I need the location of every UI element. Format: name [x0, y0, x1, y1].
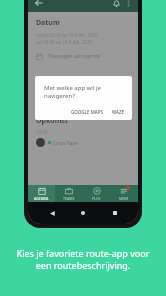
- button[interactable]: WAZE: [109, 107, 128, 117]
- button[interactable]: Home: [75, 205, 91, 221]
- button[interactable]: Meer opties: [122, 0, 134, 9]
- staticText: Route: [48, 84, 62, 91]
- staticText: tot 05:00 op 20 9 feb. 2020: [36, 39, 93, 45]
- staticText: TEAMS: [63, 196, 75, 201]
- button[interactable]: Meldingen: [110, 0, 122, 9]
- button[interactable]: AGENDA: [28, 185, 55, 202]
- button[interactable]: Recente apps: [107, 205, 123, 221]
- staticText: PLUS: [92, 196, 101, 201]
- button[interactable]: Toevoegen aan agenda: [36, 52, 130, 61]
- staticText: AGENDA: [34, 196, 49, 201]
- staticText: GOOGLE MAPS: [71, 109, 103, 115]
- staticText: Toevoegen aan agenda: [48, 53, 101, 60]
- button[interactable]: TEAMS: [55, 185, 82, 202]
- button[interactable]: Terug: [44, 205, 60, 221]
- staticText: Met welke app wil je navigeren?: [44, 84, 124, 100]
- button[interactable]: GOOGLE MAPS: [68, 107, 106, 117]
- button[interactable]: PLUS: [82, 185, 110, 202]
- button[interactable]: Adres kopiëren: [36, 98, 130, 107]
- staticText: MEER: [119, 196, 129, 201]
- staticText: Kies je favoriete route-app voor een rou…: [0, 247, 166, 272]
- button[interactable]: Route: [36, 83, 130, 92]
- staticText: vanaf 20:00 op 19 8 feb. 2020: [36, 32, 98, 38]
- button[interactable]: Terug: [33, 0, 45, 9]
- staticText: 19:45: [36, 129, 48, 135]
- staticText: Opkomst: [36, 116, 69, 126]
- staticText: WAZE: [112, 109, 125, 115]
- button[interactable]: MEER: [110, 185, 138, 202]
- staticText: Corps Haan: [53, 140, 78, 146]
- staticText: Datum: [36, 18, 60, 28]
